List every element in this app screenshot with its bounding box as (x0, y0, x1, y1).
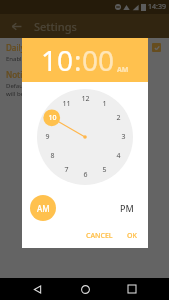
button[interactable]: Recent apps (121, 278, 143, 300)
button[interactable]: Enable daily reminder (152, 43, 161, 52)
staticText: 7 (64, 165, 69, 175)
staticText: 2 (116, 113, 121, 123)
button[interactable]: Hour 11 (58, 96, 74, 112)
button[interactable]: OK (122, 228, 142, 244)
staticText: 4 (116, 151, 121, 161)
staticText: Enable a daily notification (6, 55, 79, 63)
button[interactable]: Hour 5 (96, 162, 112, 178)
staticText: Notification time (6, 69, 71, 80)
button[interactable]: 00 (82, 41, 115, 79)
staticText: AM (37, 203, 50, 214)
button[interactable]: Hour 2 (110, 110, 126, 126)
staticText: 1 (102, 99, 107, 109)
staticText: 6 (83, 170, 88, 180)
staticText: CANCEL (86, 231, 113, 241)
staticText: 10 (48, 113, 57, 123)
staticText: Default time at which the notification w… (6, 82, 111, 98)
button[interactable]: Back (8, 18, 24, 34)
staticText: PM (120, 202, 134, 214)
button[interactable]: Hour 3 (115, 129, 131, 145)
button[interactable]: PM (114, 195, 140, 221)
button[interactable]: Back (26, 278, 48, 300)
button[interactable]: Hour 6 (77, 167, 93, 183)
staticText: 9 (45, 132, 50, 142)
staticText: 3 (121, 132, 126, 142)
staticText: 12 (81, 94, 90, 104)
staticText: AM (117, 65, 129, 75)
button[interactable]: Hour 7 (58, 162, 74, 178)
staticText: Settings (34, 19, 77, 34)
button[interactable]: Hour 4 (110, 148, 126, 164)
button[interactable]: Hour 10 (44, 110, 60, 126)
button[interactable]: Hour 8 (44, 148, 60, 164)
button[interactable]: Hour 12 (77, 91, 93, 107)
staticText: 8 (50, 151, 55, 161)
button[interactable]: Home (74, 278, 96, 300)
button[interactable]: Hour 1 (96, 96, 112, 112)
staticText: 14:39 (148, 2, 166, 12)
button[interactable]: CANCEL (81, 228, 118, 244)
staticText: OK (127, 231, 137, 241)
staticText: Daily reminder (6, 42, 63, 53)
staticText: 5 (102, 165, 107, 175)
button[interactable]: Hour 9 (39, 129, 55, 145)
staticText: 11 (62, 99, 71, 109)
button[interactable]: AM (30, 195, 56, 221)
button[interactable]: 10 (41, 41, 74, 79)
staticText: : (74, 41, 82, 79)
